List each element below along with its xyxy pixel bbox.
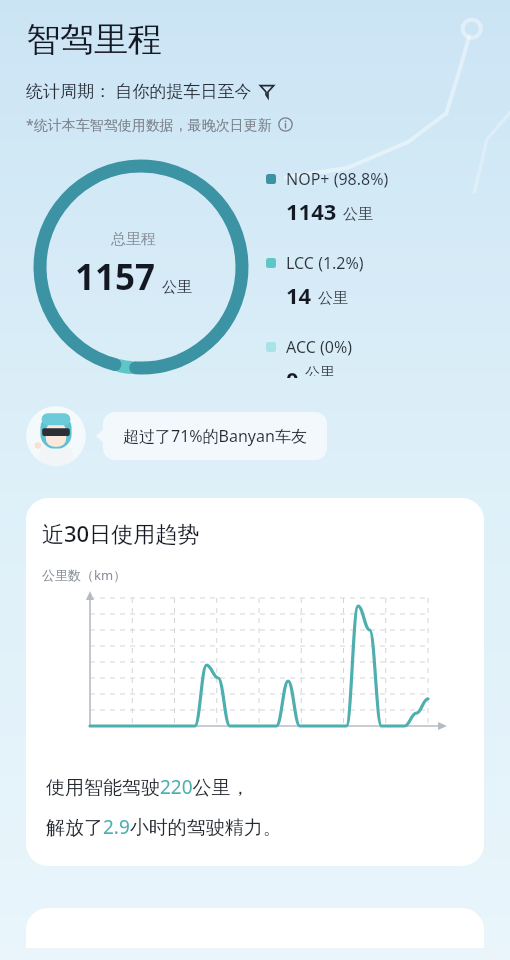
staticText: 统计周期： 自你的提车日至今 — [26, 79, 252, 102]
button[interactable]: ACC (0%) — [266, 336, 353, 378]
other: 说明 — [278, 117, 293, 132]
button[interactable]: 超过了71%的Banyan车友 — [103, 412, 327, 460]
other: 用户头像 — [26, 406, 86, 466]
staticText: 公里数（km） — [42, 566, 127, 584]
staticText: *统计本车智驾使用数据，最晚次日更新 — [26, 115, 272, 134]
button[interactable]: 近30日使用趋势 — [26, 498, 484, 866]
staticText: 1143 — [286, 196, 337, 226]
staticText: 0 — [286, 364, 299, 378]
staticText: LCC (1.2%) — [286, 252, 364, 274]
staticText: 超过了71%的Banyan车友 — [123, 425, 307, 447]
staticText: 1157 — [75, 253, 156, 301]
staticText: 公里 — [162, 278, 192, 297]
button[interactable]: LCC (1.2%) — [266, 252, 364, 310]
staticText: 智驾里程 — [26, 18, 162, 61]
staticText: 公里 — [318, 289, 348, 308]
button[interactable]: NOP+ (98.8%) — [266, 168, 389, 226]
staticText: 公里 — [305, 364, 335, 376]
staticText: 解放了2.9小时的驾驶精力。 — [46, 814, 282, 840]
staticText: 使用智能驾驶220公里， — [46, 774, 250, 800]
other: 筛选 — [259, 83, 275, 99]
staticText: ACC (0%) — [286, 336, 353, 358]
button[interactable]: 统计周期： 自你的提车日至今 — [26, 79, 275, 102]
staticText: NOP+ (98.8%) — [286, 168, 389, 190]
button[interactable]: *统计本车智驾使用数据，最晚次日更新 — [26, 115, 293, 134]
staticText: 公里 — [343, 205, 373, 224]
staticText: 14 — [286, 280, 312, 310]
staticText: 近30日使用趋势 — [42, 518, 200, 548]
staticText: 总里程 — [111, 230, 156, 249]
